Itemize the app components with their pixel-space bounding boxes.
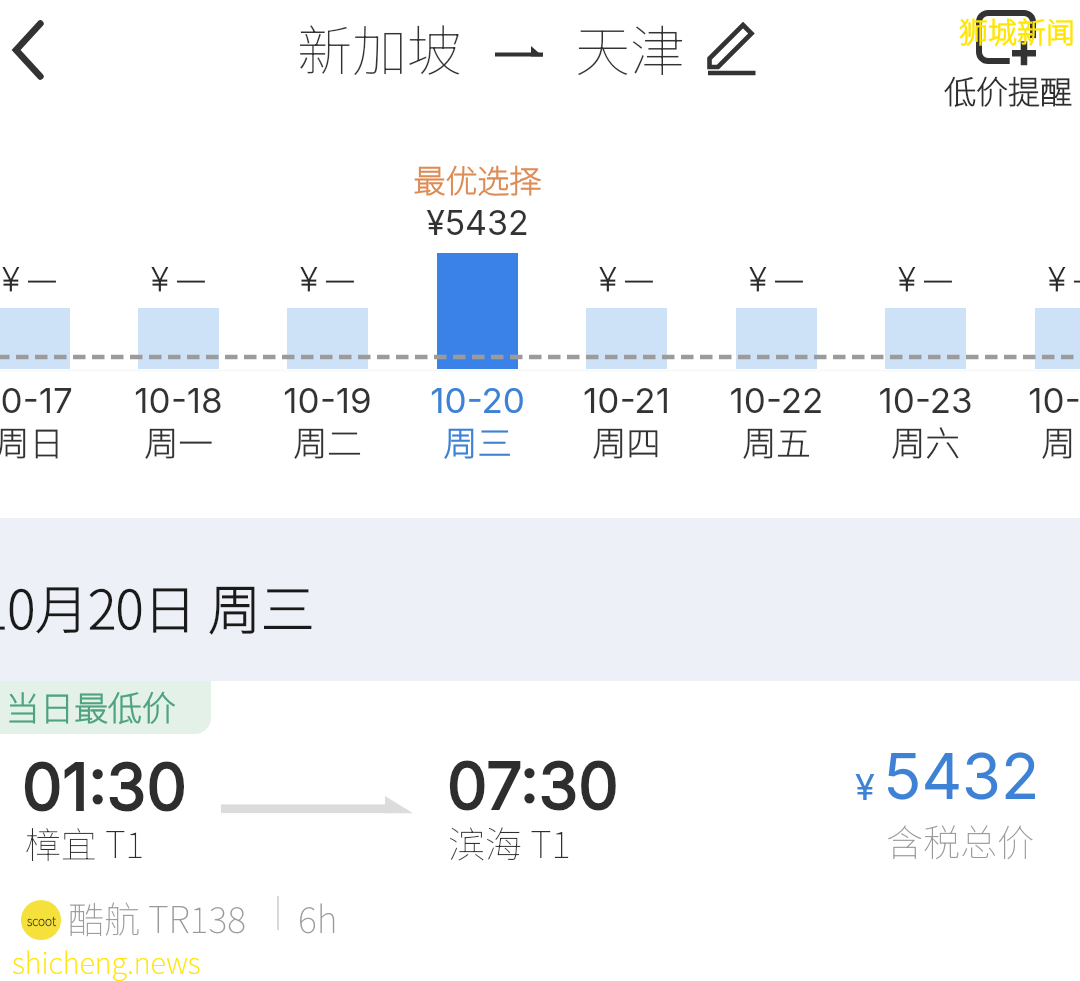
staticText: 周日 xyxy=(1001,417,1080,466)
staticText: ¥ — xyxy=(702,252,851,301)
staticText: shicheng.news xyxy=(12,940,201,981)
staticText: 5432 xyxy=(884,738,1040,814)
button[interactable]: 当日最低价 xyxy=(0,681,1080,981)
staticText: 狮城新闻 xyxy=(959,9,1076,51)
staticText: 樟宜 T1 xyxy=(25,816,145,868)
staticText: 滨海 T1 xyxy=(448,815,571,869)
button[interactable]: 低价提醒 xyxy=(930,0,1080,115)
staticText: 10-17 xyxy=(0,379,104,421)
button[interactable]: 10-20 周三 xyxy=(403,140,552,465)
staticText: 01:30 xyxy=(22,748,187,825)
staticText: 周六 xyxy=(851,417,1000,466)
staticText: 周五 xyxy=(702,417,851,466)
staticText: ¥ — xyxy=(104,252,253,301)
staticText: 10-22 xyxy=(702,379,851,421)
staticText: 含税总价 xyxy=(886,813,1034,867)
button[interactable]: 10-18 周一 xyxy=(104,140,253,465)
staticText: 6h xyxy=(298,891,338,943)
button[interactable]: Back xyxy=(0,0,74,100)
staticText: ¥ — xyxy=(0,252,104,301)
staticText: ¥5432 xyxy=(403,202,552,243)
staticText: 酷航 TR138 xyxy=(68,891,247,943)
staticText: 周四 xyxy=(552,417,701,466)
staticText: 10-20 xyxy=(403,379,552,421)
staticText: 天津 xyxy=(575,7,686,87)
staticText: ¥ xyxy=(855,765,875,809)
staticText: 10月20日 周三 xyxy=(0,568,315,645)
staticText: 周二 xyxy=(253,417,402,466)
staticText: 07:30 xyxy=(447,747,619,824)
button[interactable]: 新加坡 — 天津 编辑 xyxy=(285,0,775,96)
staticText: 低价提醒 xyxy=(944,67,1073,113)
button[interactable]: 10-23 周六 xyxy=(851,140,1000,465)
button[interactable]: 10-19 周二 xyxy=(253,140,402,465)
staticText: 10-19 xyxy=(253,379,402,421)
button[interactable]: 10-24 周日 xyxy=(1001,140,1080,465)
button[interactable]: 10-17 周日 xyxy=(0,140,104,465)
staticText: 当日最低价 xyxy=(6,682,176,731)
staticText: 周三 xyxy=(403,417,552,466)
staticText: 10-18 xyxy=(104,379,253,421)
staticText: 新加坡 xyxy=(297,7,463,87)
staticText: scoot xyxy=(27,912,56,929)
button[interactable]: 10-22 周五 xyxy=(702,140,851,465)
staticText: 10-21 xyxy=(552,379,701,421)
staticText: 10-23 xyxy=(851,379,1000,421)
staticText: ¥ — xyxy=(851,252,1000,301)
staticText: 周日 xyxy=(0,417,104,466)
staticText: ¥ — xyxy=(253,252,402,301)
staticText: 周一 xyxy=(104,417,253,466)
staticText: 最优选择 xyxy=(403,156,552,202)
staticText: ¥ — xyxy=(1001,252,1080,301)
staticText: ¥ — xyxy=(552,252,701,301)
button[interactable]: 10-21 周四 xyxy=(552,140,701,465)
staticText: 10-24 xyxy=(1001,379,1080,421)
